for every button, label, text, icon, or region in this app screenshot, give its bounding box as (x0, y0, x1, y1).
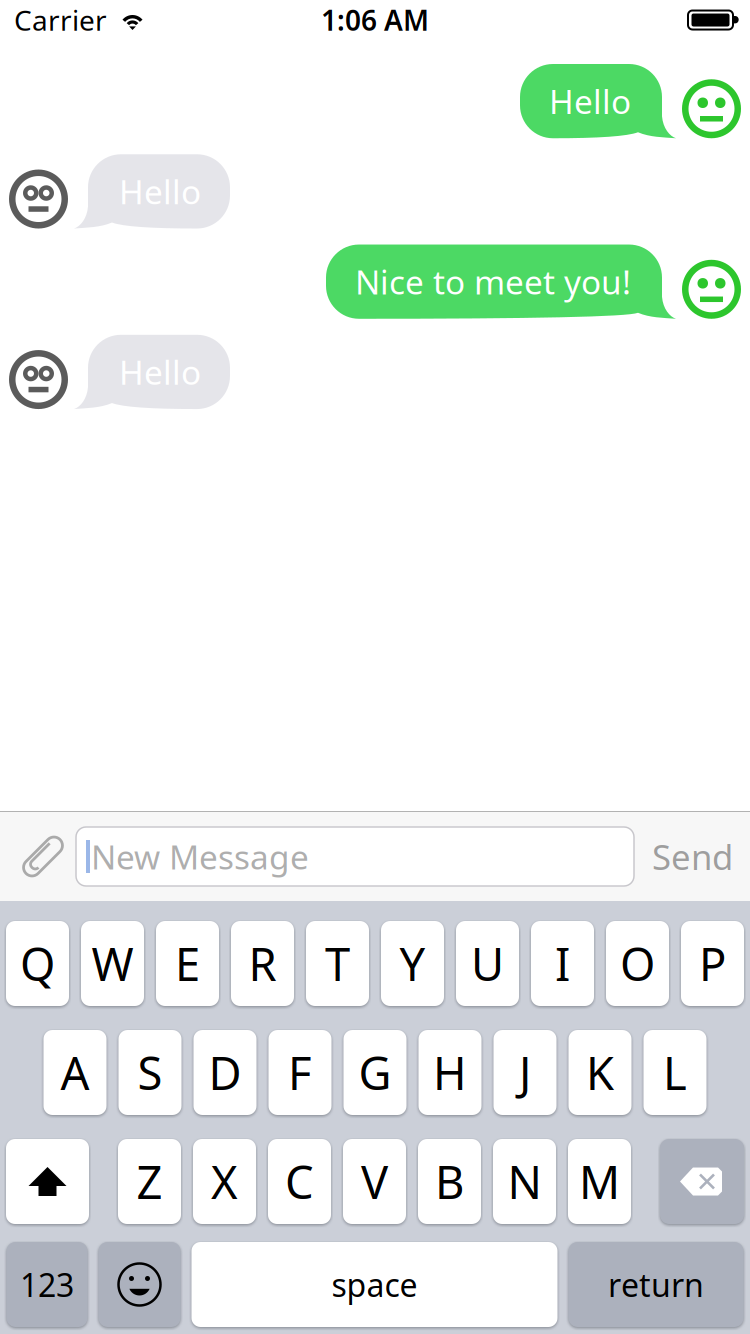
staticText: Send (652, 833, 733, 879)
staticText: N (507, 1151, 541, 1212)
button[interactable]: Attach (10, 825, 76, 887)
staticText: Y (399, 933, 425, 994)
button[interactable]: D (193, 1030, 256, 1115)
button[interactable]: A (43, 1030, 106, 1115)
staticText: R (248, 933, 276, 994)
staticText: K (586, 1042, 614, 1103)
button[interactable]: S (118, 1030, 181, 1115)
button[interactable]: Y (381, 921, 444, 1006)
button[interactable]: M (568, 1139, 631, 1224)
staticText: L (663, 1042, 687, 1103)
button[interactable]: J (493, 1030, 556, 1115)
button[interactable]: G (343, 1030, 406, 1115)
button[interactable]: 123 (6, 1242, 87, 1327)
button[interactable]: N (493, 1139, 556, 1224)
staticText: C (285, 1151, 314, 1212)
staticText: F (288, 1042, 312, 1103)
button[interactable]: X (193, 1139, 256, 1224)
button[interactable]: H (418, 1030, 481, 1115)
staticText: J (519, 1042, 531, 1103)
staticText: T (325, 933, 350, 994)
staticText: M (579, 1151, 620, 1212)
staticText: G (358, 1042, 391, 1103)
button[interactable]: W (81, 921, 144, 1006)
button[interactable]: K (568, 1030, 631, 1115)
staticText: 1:06 AM (321, 1, 429, 39)
staticText: I (555, 933, 570, 994)
staticText: X (211, 1151, 238, 1212)
button[interactable]: P (681, 921, 744, 1006)
staticText: Hello (549, 79, 631, 123)
staticText: return (608, 1263, 704, 1306)
staticText: Z (136, 1151, 162, 1212)
button[interactable]: L (643, 1030, 706, 1115)
button[interactable]: Z (118, 1139, 181, 1224)
button[interactable]: C (268, 1139, 331, 1224)
button[interactable]: T (306, 921, 369, 1006)
staticText: New Message (91, 834, 309, 879)
button[interactable]: V (343, 1139, 406, 1224)
staticText: V (361, 1151, 388, 1212)
staticText: S (137, 1042, 162, 1103)
staticText: Hello (119, 169, 201, 214)
staticText: B (435, 1151, 464, 1212)
button[interactable]: R (231, 921, 294, 1006)
staticText: D (208, 1042, 241, 1103)
button[interactable]: Send (634, 827, 750, 886)
button[interactable]: space (191, 1242, 557, 1327)
staticText: Nice to meet you! (355, 259, 631, 304)
staticText: Q (20, 933, 55, 994)
button[interactable]: Delete (660, 1139, 744, 1224)
button[interactable]: return (568, 1242, 743, 1327)
button[interactable]: Shift (6, 1139, 89, 1224)
button[interactable]: F (268, 1030, 331, 1115)
button[interactable]: O (606, 921, 669, 1006)
staticText: P (699, 933, 726, 994)
staticText: O (620, 933, 655, 994)
button[interactable]: Q (6, 921, 69, 1006)
staticText: E (175, 933, 200, 994)
button[interactable]: B (418, 1139, 481, 1224)
button[interactable]: I (531, 921, 594, 1006)
button[interactable]: U (456, 921, 519, 1006)
staticText: W (91, 933, 133, 994)
button[interactable]: E (156, 921, 219, 1006)
staticText: space (331, 1263, 417, 1306)
staticText: Hello (119, 350, 201, 394)
staticText: A (60, 1042, 89, 1103)
staticText: U (471, 933, 504, 994)
staticText: 123 (20, 1263, 74, 1306)
staticText: H (433, 1042, 467, 1103)
staticText: Carrier (14, 1, 107, 39)
button[interactable]: Emoji keyboard (98, 1242, 180, 1327)
